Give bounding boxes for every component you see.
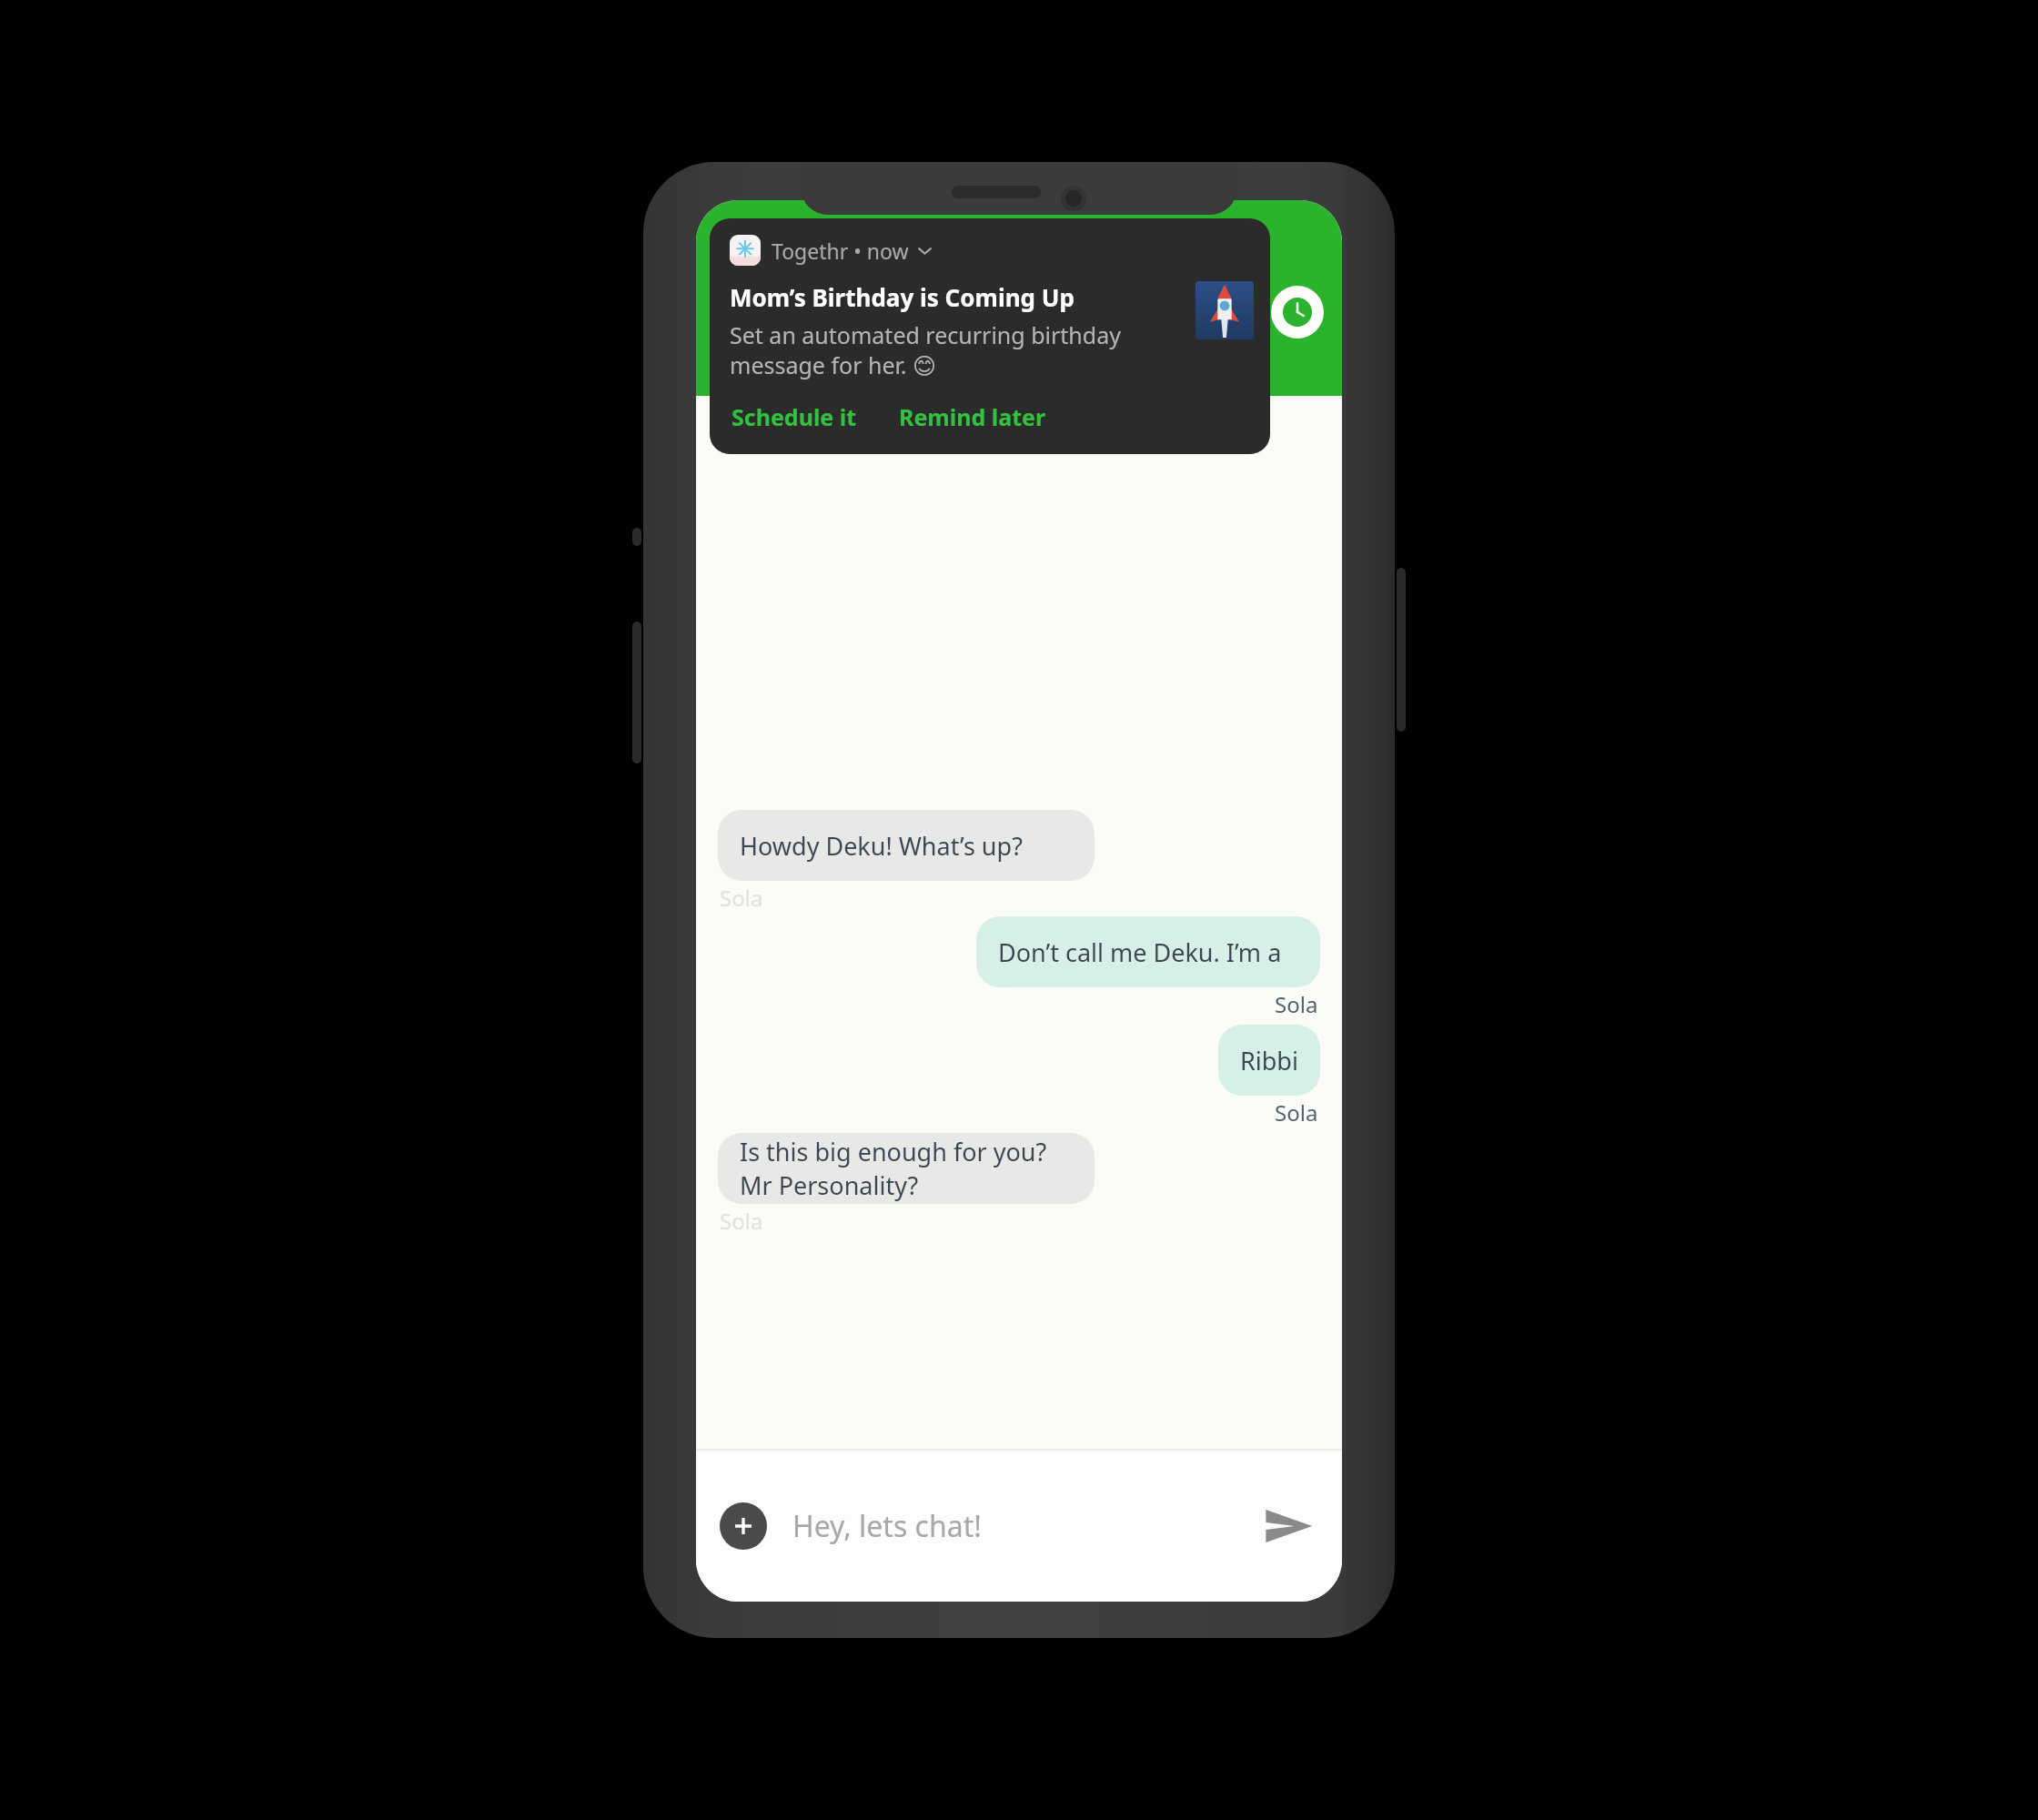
button[interactable]: Togethr • now: [710, 218, 1270, 454]
button[interactable]: Remind later: [897, 399, 1048, 434]
staticText: Set an automated recurring birthday mess…: [730, 319, 1185, 381]
button[interactable]: Ribbit 🐸: [1218, 1025, 1320, 1096]
button[interactable]: Send: [1258, 1496, 1318, 1556]
staticText: Don’t call me Deku. I’m a total Froppy.: [998, 935, 1298, 969]
button[interactable]: Howdy Deku! What’s up?: [718, 810, 1095, 881]
staticText: Sola: [720, 1206, 763, 1236]
staticText: Schedule it: [731, 401, 857, 432]
button[interactable]: Hey, lets chat!: [792, 1451, 1258, 1602]
staticText: Sola: [720, 883, 763, 913]
staticText: Howdy Deku! What’s up?: [740, 829, 1023, 863]
button[interactable]: Schedule it: [730, 399, 859, 434]
button[interactable]: Is this big enough for you? Mr Personali…: [718, 1133, 1095, 1204]
staticText: Sola: [1275, 1097, 1318, 1127]
button[interactable]: Don’t call me Deku. I’m a total Froppy.: [976, 916, 1320, 987]
staticText: Sola: [1275, 989, 1318, 1019]
staticText: Jane Thomas: [787, 289, 1002, 335]
staticText: Hey, lets chat!: [792, 1506, 982, 1546]
button[interactable]: Add attachment: [720, 1502, 767, 1550]
staticText: Togethr • now: [772, 237, 909, 265]
button[interactable]: Back: [714, 286, 767, 339]
staticText: Remind later: [899, 401, 1046, 432]
staticText: Mom’s Birthday is Coming Up: [730, 281, 1074, 313]
staticText: Is this big enough for you? Mr Personali…: [740, 1135, 1073, 1202]
button[interactable]: History: [1271, 286, 1324, 339]
staticText: Ribbit 🐸: [1240, 1044, 1298, 1077]
